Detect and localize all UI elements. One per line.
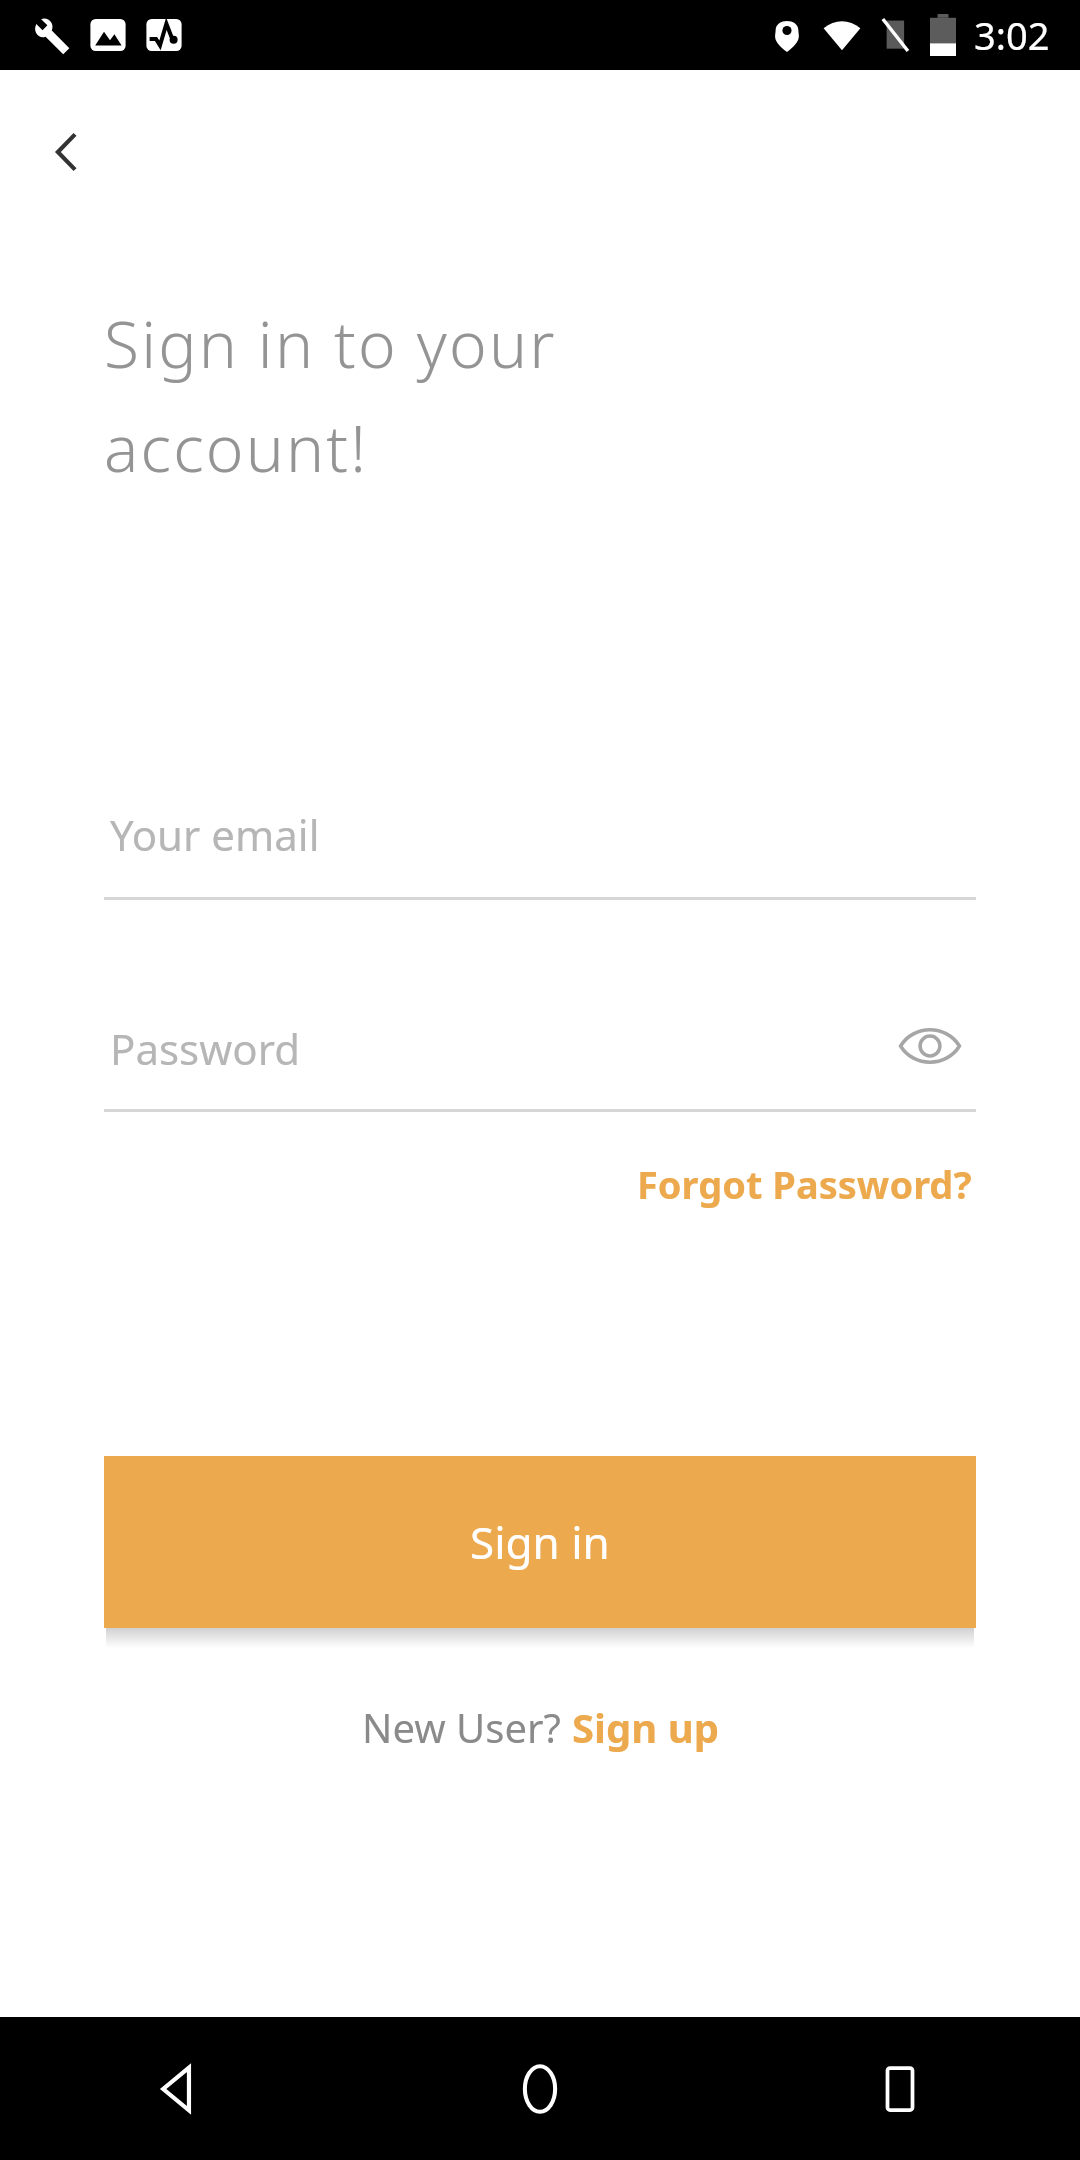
button[interactable]: Home [360,2017,720,2160]
staticText: New User? [362,1700,572,1754]
button[interactable]: Show password [880,996,980,1096]
button[interactable]: Forgot Password? [633,1148,976,1220]
staticText: Your email [110,806,320,863]
button[interactable]: Your email [104,780,976,900]
staticText: 3:02 [974,9,1050,61]
staticText: Sign in to your account! [104,300,557,491]
staticText: Sign up [572,1700,719,1754]
button[interactable]: Back [18,102,118,202]
staticText: Sign in [470,1512,610,1572]
button[interactable]: Sign up [572,1700,719,1754]
staticText: Forgot Password? [637,1158,972,1210]
button[interactable]: Password [104,996,976,1112]
staticText: Password [110,1020,300,1077]
button[interactable]: Back [0,2017,360,2160]
button[interactable]: Sign in [104,1456,976,1628]
button[interactable]: Recent apps [720,2017,1080,2160]
